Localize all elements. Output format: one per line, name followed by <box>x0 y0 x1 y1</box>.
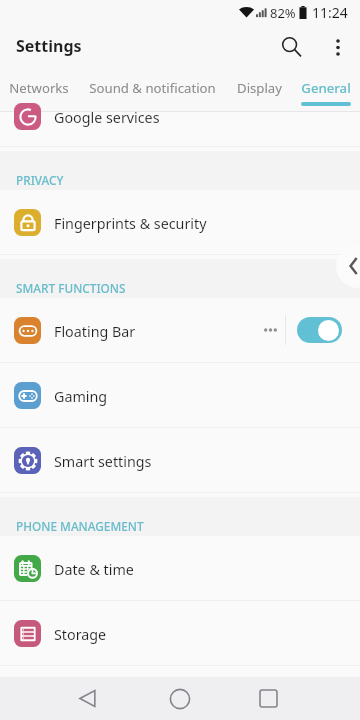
button[interactable]: Search <box>268 23 316 71</box>
button[interactable]: Storage <box>0 601 360 666</box>
staticText: Google services <box>54 108 160 127</box>
staticText: Networks <box>9 79 69 97</box>
button[interactable]: More options <box>316 25 360 69</box>
staticText: PRIVACY <box>16 172 64 188</box>
staticText: Display <box>237 79 282 97</box>
staticText: Storage <box>54 625 107 644</box>
staticText: PHONE MANAGEMENT <box>16 518 144 534</box>
staticText: Gaming <box>54 387 108 406</box>
staticText: Floating Bar <box>54 322 136 341</box>
button[interactable]: Google services <box>0 112 360 147</box>
button[interactable]: Display <box>226 74 292 108</box>
staticText: SMART FUNCTIONS <box>16 280 126 296</box>
button[interactable]: Recent apps <box>244 677 292 720</box>
staticText: Smart settings <box>54 452 152 471</box>
staticText: 82% <box>270 4 296 22</box>
button[interactable]: Open floating bar <box>336 244 360 288</box>
button[interactable]: Home <box>156 677 204 720</box>
staticText: Date & time <box>54 560 134 579</box>
button[interactable]: Date & time <box>0 536 360 601</box>
button[interactable]: Fingerprints & security <box>0 190 360 255</box>
staticText: General <box>301 79 351 97</box>
button[interactable]: Floating Bar options <box>255 307 285 353</box>
staticText: 11:24 <box>312 3 348 22</box>
button[interactable]: Smart settings <box>0 428 360 493</box>
staticText: Fingerprints & security <box>54 214 207 233</box>
staticText: Sound & notification <box>89 79 216 97</box>
button[interactable]: Networks <box>0 74 78 108</box>
button[interactable]: Back <box>64 677 112 720</box>
button[interactable]: General <box>292 74 360 108</box>
button[interactable]: Sound & notification <box>78 74 226 108</box>
staticText: Settings <box>16 35 82 57</box>
button[interactable]: Floating Bar <box>0 298 360 363</box>
button[interactable]: Floating Bar toggle <box>297 317 342 343</box>
button[interactable]: Gaming <box>0 363 360 428</box>
